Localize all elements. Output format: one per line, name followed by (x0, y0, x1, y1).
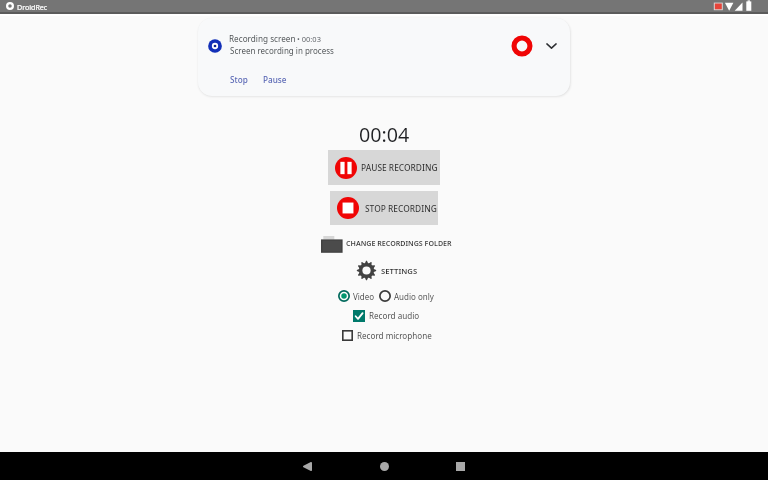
staticText: DroidRec (17, 2, 48, 12)
button[interactable]: STOP RECORDING (330, 191, 438, 225)
button[interactable]: Pause (257, 71, 293, 88)
button[interactable]: Stop (224, 71, 254, 88)
staticText: 00:04 (359, 121, 410, 148)
button[interactable]: Audio only (379, 290, 434, 302)
staticText: SETTINGS (381, 266, 418, 276)
staticText: Pause (263, 74, 287, 85)
other: Recording indicator (511, 35, 533, 57)
staticText: STOP RECORDING (365, 203, 437, 214)
staticText: Stop (230, 74, 248, 85)
button[interactable]: Recent apps (440, 452, 480, 480)
staticText: PAUSE RECORDING (361, 162, 438, 173)
button[interactable]: Recording screen (198, 18, 570, 96)
button[interactable]: Home (364, 452, 404, 480)
staticText: Audio only (394, 291, 434, 302)
staticText: Record audio (369, 310, 420, 321)
button[interactable]: Back (287, 452, 327, 480)
button[interactable]: Record audio (353, 309, 420, 322)
staticText: Recording screen (229, 33, 296, 44)
button[interactable]: SETTINGS (356, 260, 418, 281)
button[interactable]: PAUSE RECORDING (328, 150, 440, 185)
staticText: Record microphone (357, 330, 432, 341)
staticText: • 00:03 (297, 34, 321, 44)
button[interactable]: Video (338, 290, 375, 302)
staticText: CHANGE RECORDINGS FOLDER (346, 238, 452, 248)
staticText: Screen recording in process (230, 45, 334, 56)
staticText: Video (353, 291, 375, 302)
other: System status icons (712, 0, 756, 12)
button[interactable]: Record microphone (342, 329, 432, 342)
button[interactable]: CHANGE RECORDINGS FOLDER (321, 232, 452, 253)
button[interactable]: Expand notification (544, 38, 559, 53)
